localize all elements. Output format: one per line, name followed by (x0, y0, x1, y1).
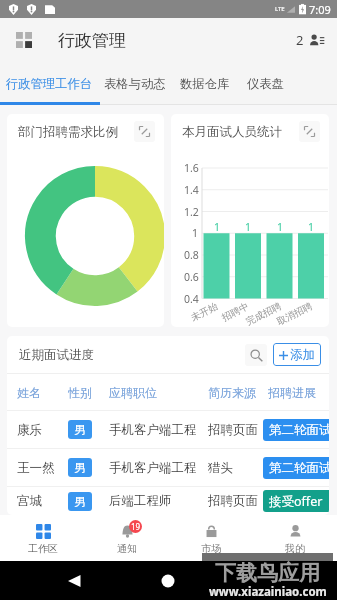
staticText: 猎头 (208, 460, 268, 476)
button[interactable]: 工作区 (0, 515, 85, 561)
staticText: 行政管理工作台 (6, 76, 93, 91)
staticText: 表格与动态 (104, 76, 166, 91)
staticText: 1 (214, 220, 221, 234)
staticText: 1.4 (184, 183, 199, 197)
button[interactable]: 添加 (273, 343, 321, 366)
button[interactable]: Search (245, 344, 267, 366)
staticText: 男 (74, 422, 86, 437)
staticText: 7:09 (309, 2, 331, 17)
staticText: 19 (131, 521, 141, 532)
button[interactable]: Expand (134, 121, 155, 142)
staticText: 2 (296, 31, 304, 49)
staticText: 添加 (290, 347, 315, 363)
staticText: 1 (277, 220, 284, 234)
button[interactable]: 19 (85, 515, 169, 561)
button[interactable]: 行政管理工作台 (0, 62, 98, 105)
staticText: 行政管理 (58, 30, 126, 51)
staticText: 1 (308, 220, 315, 234)
staticText: 市场 (201, 542, 221, 555)
button[interactable]: 市场 (169, 515, 253, 561)
staticText: 下载鸟应用 (215, 560, 320, 586)
staticText: 手机客户端工程师 (109, 422, 208, 438)
staticText: 1 (192, 226, 199, 240)
staticText: 部门招聘需求比例 (18, 124, 118, 140)
button[interactable]: 我的 (253, 515, 337, 561)
staticText: 男 (74, 460, 86, 475)
button[interactable]: 表格与动态 (98, 62, 172, 105)
staticText: 性别 (68, 385, 109, 400)
staticText: 后端工程师 (109, 493, 208, 509)
staticText: 第二轮面试 (269, 460, 329, 476)
button[interactable]: 2 (292, 27, 329, 53)
staticText: 王一然 (17, 460, 68, 476)
staticText: 0.8 (184, 248, 199, 262)
button[interactable]: 仪表盘 (237, 62, 293, 105)
staticText: 仪表盘 (247, 76, 284, 91)
staticText: 未开始 (189, 300, 220, 324)
staticText: 应聘职位 (109, 385, 208, 400)
staticText: 本月面试人员统计 (182, 124, 282, 140)
button[interactable]: Expand (299, 121, 320, 142)
staticText: 招聘进展 (268, 385, 316, 400)
staticText: 数据仓库 (180, 76, 230, 91)
staticText: 近期面试进度 (19, 347, 94, 363)
staticText: 通知 (117, 542, 137, 555)
staticText: LTE (275, 5, 285, 13)
staticText: 招聘页面 (208, 422, 268, 438)
staticText: www.xiazainiao.com (209, 584, 327, 600)
staticText: 1 (245, 220, 252, 234)
staticText: 工作区 (28, 542, 58, 555)
staticText: 招聘页面 (208, 493, 268, 509)
staticText: 男 (74, 494, 86, 509)
staticText: 完成招聘 (244, 300, 283, 327)
staticText: 1.2 (184, 205, 199, 219)
button[interactable]: 宫城 (7, 486, 329, 515)
staticText: 0.6 (184, 270, 199, 284)
staticText: 康乐 (17, 422, 68, 438)
staticText: 简历来源 (208, 385, 268, 400)
staticText: 宫城 (17, 493, 68, 509)
staticText: 手机客户端工程师 (109, 460, 208, 476)
other: Members (308, 32, 325, 49)
staticText: 接受offer (269, 493, 323, 510)
staticText: 1.6 (184, 161, 199, 175)
staticText: 第二轮面试 (269, 422, 329, 438)
staticText: 招聘中 (220, 300, 251, 324)
button[interactable]: 康乐 (7, 410, 329, 448)
button[interactable]: 王一然 (7, 448, 329, 486)
staticText: 我的 (285, 542, 305, 555)
staticText: 姓名 (17, 385, 68, 400)
button[interactable]: Apps (11, 27, 37, 53)
staticText: 0.4 (184, 292, 199, 306)
staticText: 取消招聘 (275, 300, 314, 327)
button[interactable]: 数据仓库 (172, 62, 237, 105)
